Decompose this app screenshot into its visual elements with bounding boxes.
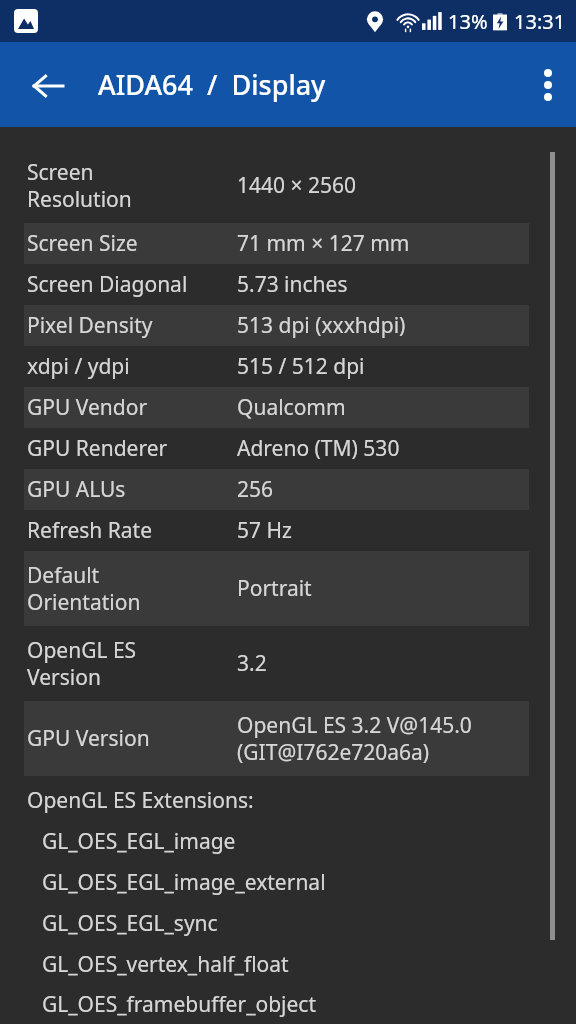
staticText: GPU Renderer	[27, 434, 168, 463]
staticText: OpenGL ES Extensions:	[27, 786, 254, 815]
staticText: 13:31	[514, 8, 566, 35]
button[interactable]: GPU ALUs	[0, 469, 576, 510]
staticText: OpenGL ES 3.2 V@145.0 (GIT@I762e720a6a)	[237, 711, 472, 766]
staticText: Portrait	[237, 574, 312, 603]
staticText: OpenGL ES Version	[27, 636, 137, 691]
button[interactable]: Refresh Rate	[0, 510, 576, 551]
staticText: GPU ALUs	[27, 475, 126, 504]
staticText: xdpi / ydpi	[27, 352, 130, 381]
button[interactable]: GPU Renderer	[0, 428, 576, 469]
staticText: GL_OES_EGL_image_external	[42, 868, 326, 897]
staticText: 13%	[448, 8, 488, 35]
staticText: Screen Size	[27, 229, 138, 258]
staticText: 256	[237, 475, 274, 504]
staticText: 513 dpi (xxxhdpi)	[237, 311, 406, 340]
button[interactable]: Screen Resolution	[0, 148, 576, 223]
staticText: GL_OES_EGL_sync	[42, 909, 218, 938]
staticText: GL_OES_EGL_image	[42, 827, 236, 856]
staticText: Screen Resolution	[27, 158, 132, 213]
staticText: Pixel Density	[27, 311, 153, 340]
button[interactable]: OpenGL ES Version	[0, 626, 576, 701]
staticText: Refresh Rate	[27, 516, 152, 545]
button[interactable]: More options	[520, 57, 576, 113]
staticText: GL_OES_vertex_half_float	[42, 950, 289, 979]
staticText: 515 / 512 dpi	[237, 352, 365, 381]
button[interactable]: GPU Vendor	[0, 387, 576, 428]
staticText: 5.73 inches	[237, 270, 348, 299]
staticText: 1440 × 2560	[237, 171, 357, 200]
staticText: Default Orientation	[27, 561, 141, 616]
button[interactable]: Default Orientation	[0, 551, 576, 626]
button[interactable]: Back	[18, 66, 78, 106]
staticText: AIDA64 / Display	[98, 66, 326, 103]
button[interactable]: GPU Version	[0, 701, 576, 776]
staticText: Screen Diagonal	[27, 270, 188, 299]
staticText: Qualcomm	[237, 393, 346, 422]
button[interactable]: Screen Diagonal	[0, 264, 576, 305]
staticText: 71 mm × 127 mm	[237, 229, 410, 258]
button[interactable]: xdpi / ydpi	[0, 346, 576, 387]
staticText: 57 Hz	[237, 516, 292, 545]
button[interactable]: Screen Size	[0, 223, 576, 264]
staticText: Adreno (TM) 530	[237, 434, 400, 463]
staticText: 3.2	[237, 649, 267, 678]
staticText: GPU Version	[27, 724, 150, 753]
button[interactable]: Pixel Density	[0, 305, 576, 346]
staticText: GPU Vendor	[27, 393, 148, 422]
staticText: GL_OES_framebuffer_object	[42, 990, 317, 1019]
